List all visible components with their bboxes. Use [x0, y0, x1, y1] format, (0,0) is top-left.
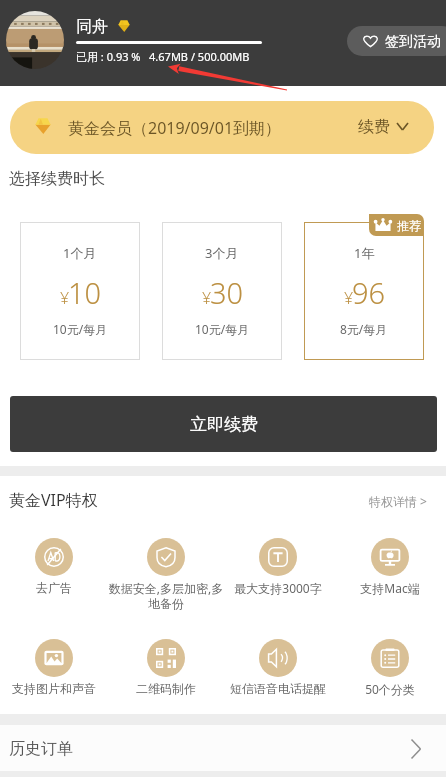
staticText: 选择续费时长: [9, 169, 105, 189]
staticText: 支持图片和声音: [0, 681, 117, 696]
staticText: 已用 : 0.93 % 4.67MB / 500.00MB: [76, 49, 250, 64]
staticText: 30: [210, 273, 244, 312]
button[interactable]: 特权详情 >: [363, 491, 433, 511]
button[interactable]: 二维码制作: [103, 637, 229, 701]
button[interactable]: 最大支持3000字: [215, 536, 341, 600]
button[interactable]: 签到活动: [347, 26, 446, 56]
staticText: 续费: [358, 117, 390, 137]
staticText: 1个月: [63, 244, 97, 262]
staticText: 立即续费: [190, 414, 258, 435]
staticText: 推荐: [397, 218, 421, 233]
button[interactable]: 1个月: [20, 222, 140, 360]
staticText: 10元/每月: [195, 321, 250, 337]
button[interactable]: 50个分类: [327, 637, 446, 701]
staticText: 数据安全,多层加密,多 地备份: [103, 580, 229, 612]
button[interactable]: 去广告: [0, 536, 117, 600]
button[interactable]: 推荐: [369, 214, 424, 236]
staticText: 同舟: [76, 17, 108, 37]
staticText: ¥: [344, 287, 354, 309]
staticText: 黄金VIP特权: [9, 489, 98, 511]
staticText: 3个月: [205, 244, 239, 262]
staticText: 去广告: [0, 580, 117, 595]
staticText: 50个分类: [327, 681, 446, 697]
staticText: 历史订单: [9, 739, 73, 759]
staticText: ¥: [60, 287, 70, 309]
staticText: 10: [68, 273, 102, 312]
staticText: 特权详情 >: [369, 493, 427, 509]
button[interactable]: 短信语音电话提醒: [215, 637, 341, 701]
staticText: 1年: [354, 244, 375, 262]
staticText: 黄金会员（2019/09/01到期）: [68, 117, 282, 139]
button[interactable]: 立即续费: [10, 396, 437, 452]
button[interactable]: 支持图片和声音: [0, 637, 117, 701]
button[interactable]: 历史订单: [0, 725, 446, 771]
button[interactable]: 3个月: [162, 222, 282, 360]
button[interactable]: 数据安全,多层加密,多 地备份: [103, 536, 229, 600]
button[interactable]: 1年: [304, 222, 424, 360]
staticText: 96: [352, 273, 386, 312]
staticText: 8元/每月: [340, 321, 388, 337]
staticText: 短信语音电话提醒: [215, 681, 341, 696]
staticText: 最大支持3000字: [215, 580, 341, 596]
staticText: 10元/每月: [53, 321, 108, 337]
staticText: 签到活动: [385, 33, 441, 51]
staticText: ¥: [202, 287, 212, 309]
staticText: 支持Mac端: [327, 580, 446, 596]
staticText: 二维码制作: [103, 681, 229, 696]
button[interactable]: 黄金会员（2019/09/01到期）: [10, 101, 434, 154]
button[interactable]: 支持Mac端: [327, 536, 446, 600]
